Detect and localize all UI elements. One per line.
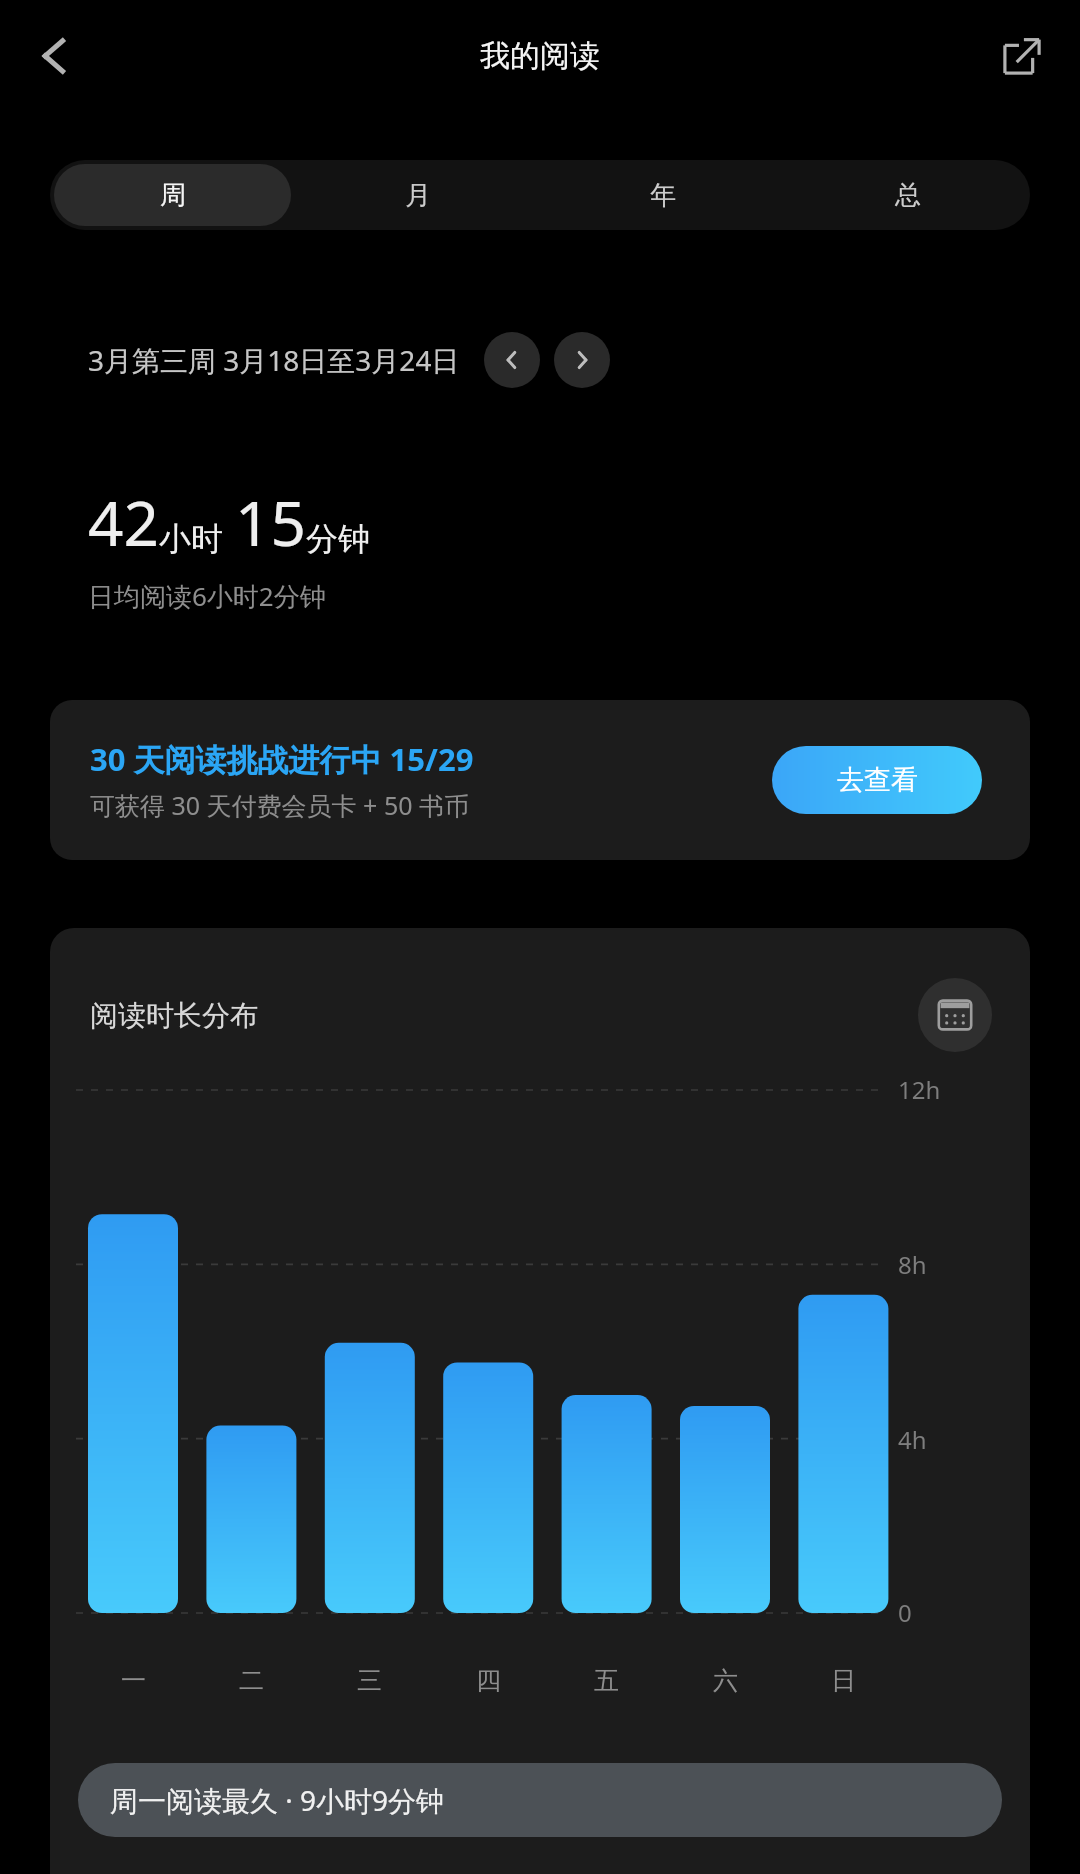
staticText: 月 <box>405 179 431 212</box>
staticText: 总 <box>895 179 921 212</box>
staticText: 3月第三周 3月18日至3月24日 <box>88 341 460 379</box>
staticText: 42 <box>88 480 159 564</box>
staticText: 去查看 <box>837 763 918 797</box>
button[interactable]: Back <box>14 15 96 97</box>
staticText: 周 <box>160 179 186 212</box>
button[interactable]: Previous week <box>484 332 540 388</box>
staticText: 30 天阅读挑战进行中 15/29 <box>90 738 474 780</box>
button[interactable]: 月 <box>299 164 536 226</box>
staticText: 阅读时长分布 <box>90 998 258 1033</box>
button[interactable]: Next week <box>554 332 610 388</box>
staticText: 4h <box>898 1423 927 1456</box>
button[interactable]: 周一阅读最久 · 9小时9分钟 <box>78 1763 1002 1837</box>
button[interactable]: 年 <box>544 164 781 226</box>
staticText: 可获得 30 天付费会员卡 + 50 书币 <box>90 788 470 822</box>
button[interactable]: 去查看 <box>772 746 982 814</box>
staticText: 四 <box>476 1665 501 1696</box>
button[interactable]: 周 <box>54 164 291 226</box>
staticText: 日 <box>831 1665 856 1696</box>
staticText: 二 <box>239 1665 264 1696</box>
button[interactable]: 30 天阅读挑战进行中 15/29 <box>50 700 1030 860</box>
staticText: 小时 <box>159 519 223 559</box>
staticText: 15 <box>235 480 306 564</box>
staticText: 0 <box>898 1596 912 1629</box>
staticText: 周一阅读最久 · 9小时9分钟 <box>110 1781 445 1819</box>
staticText: 12h <box>898 1073 941 1106</box>
staticText: 一 <box>121 1665 146 1696</box>
button[interactable]: Share <box>982 16 1062 96</box>
staticText: 年 <box>650 179 676 212</box>
button[interactable]: Calendar <box>918 978 992 1052</box>
staticText: 8h <box>898 1248 927 1281</box>
staticText: 日均阅读6小时2分钟 <box>88 578 326 614</box>
staticText: 五 <box>594 1665 619 1696</box>
staticText: 分钟 <box>306 519 370 559</box>
staticText: 三 <box>357 1665 382 1696</box>
staticText: 我的阅读 <box>480 37 600 75</box>
staticText: 六 <box>713 1665 738 1696</box>
button[interactable]: 总 <box>789 164 1026 226</box>
